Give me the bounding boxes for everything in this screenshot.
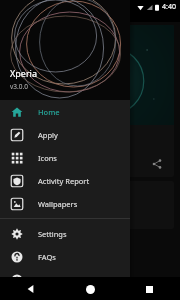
button[interactable]: Activity Report bbox=[0, 169, 130, 192]
staticText: About bbox=[38, 275, 60, 285]
staticText: Xperia bbox=[10, 67, 37, 79]
button[interactable]: Apply bbox=[0, 123, 130, 146]
button[interactable]: About bbox=[0, 268, 130, 291]
button[interactable]: Recent apps bbox=[140, 280, 158, 298]
button[interactable]: FAQs bbox=[0, 245, 130, 268]
staticText: Icons bbox=[38, 153, 57, 163]
button[interactable]: Back bbox=[22, 280, 40, 298]
staticText: Support development of this icon pack bbox=[14, 203, 81, 221]
staticText: 4:40 bbox=[162, 2, 176, 12]
staticText: Rate this app if you like please bbox=[14, 135, 114, 145]
staticText: Home bbox=[38, 107, 60, 117]
button[interactable]: Wallpapers bbox=[0, 192, 130, 215]
button[interactable]: Settings bbox=[0, 222, 130, 245]
button[interactable]: Icons bbox=[0, 146, 130, 169]
button[interactable]: Home bbox=[81, 280, 99, 298]
staticText: Settings bbox=[38, 229, 67, 239]
staticText: Donate bbox=[14, 189, 40, 199]
button[interactable]: Home bbox=[0, 100, 130, 123]
staticText: FAQs bbox=[38, 252, 56, 262]
staticText: Apply bbox=[38, 130, 58, 140]
staticText: Wallpapers bbox=[38, 199, 78, 209]
staticText: v3.0.0 bbox=[10, 82, 28, 91]
staticText: Activity Report bbox=[38, 176, 90, 186]
button[interactable]: Share bbox=[150, 157, 164, 171]
